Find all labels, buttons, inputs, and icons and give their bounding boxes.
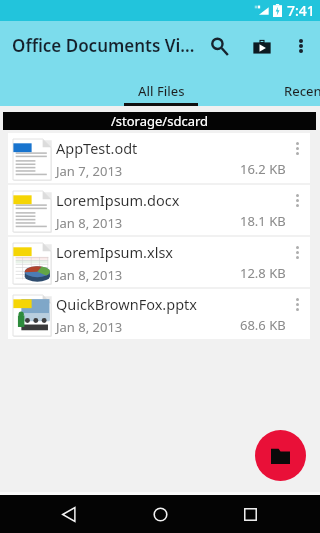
button[interactable]: LoremIpsum.docx xyxy=(8,185,310,235)
button[interactable]: QuickBrownFox.pptx xyxy=(8,289,310,339)
button[interactable]: Item options xyxy=(286,133,308,163)
staticText: 7:41 xyxy=(287,1,315,20)
button[interactable]: Recent xyxy=(198,70,320,106)
staticText: Jan 8, 2013 xyxy=(56,214,123,232)
button[interactable]: Back xyxy=(48,495,90,533)
staticText: Recent xyxy=(284,82,320,100)
staticText: 68.6 KB xyxy=(240,316,286,334)
staticText: 18.1 KB xyxy=(240,212,286,230)
staticText: All Files xyxy=(138,82,185,100)
button[interactable]: Home xyxy=(139,495,181,533)
button[interactable]: /storage/sdcard xyxy=(3,112,316,130)
button[interactable]: AppTest.odt xyxy=(8,133,310,183)
button[interactable]: Search xyxy=(199,26,239,66)
staticText: /storage/sdcard xyxy=(111,112,209,130)
button[interactable]: LoremIpsum.xlsx xyxy=(8,237,310,287)
staticText: QuickBrownFox.pptx xyxy=(56,294,197,314)
staticText: LoremIpsum.docx xyxy=(56,190,180,210)
staticText: 16.2 KB xyxy=(240,160,286,178)
button[interactable]: More options xyxy=(284,26,318,66)
button[interactable]: All Files xyxy=(124,70,198,106)
button[interactable]: Item options xyxy=(286,237,308,267)
staticText: Office Documents Vi... xyxy=(12,34,199,57)
staticText: Jan 7, 2013 xyxy=(56,162,123,180)
button[interactable]: New folder xyxy=(255,430,306,481)
button[interactable]: Item options xyxy=(286,289,308,319)
staticText: Jan 8, 2013 xyxy=(56,266,123,284)
button[interactable]: Item options xyxy=(286,185,308,215)
staticText: AppTest.odt xyxy=(56,138,138,158)
staticText: Jan 8, 2013 xyxy=(56,318,123,336)
button[interactable]: Play Store xyxy=(244,26,284,66)
button[interactable]: Recents xyxy=(229,495,271,533)
staticText: 12.8 KB xyxy=(240,264,286,282)
staticText: LoremIpsum.xlsx xyxy=(56,242,174,262)
